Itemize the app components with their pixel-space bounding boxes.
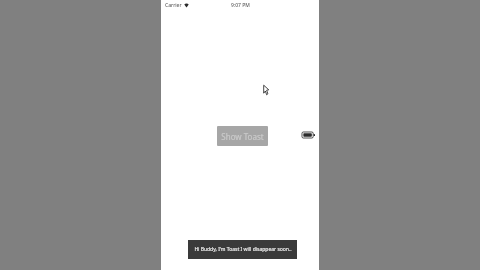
button[interactable]: Show Toast xyxy=(217,126,268,146)
other: Battery full xyxy=(302,132,315,138)
other: Wi-Fi signal xyxy=(184,3,189,8)
staticText: Show Toast xyxy=(221,131,264,142)
staticText: Hi Buddy, I'm Toast I will disappear soo… xyxy=(194,246,292,253)
staticText: Carrier xyxy=(165,2,182,9)
staticText: 9:07 PM xyxy=(231,2,250,9)
